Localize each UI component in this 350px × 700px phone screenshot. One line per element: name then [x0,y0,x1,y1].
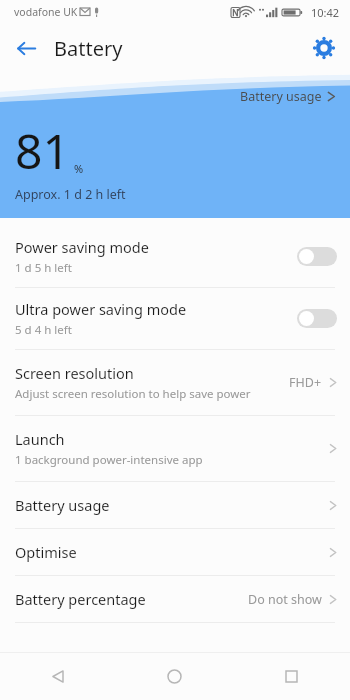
staticText: Launch [15,429,65,449]
staticText: Do not show [248,591,322,608]
button[interactable]: Settings [304,28,344,68]
button[interactable]: Launch [0,416,350,481]
staticText: 1 d 5 h left [15,260,72,276]
button[interactable]: Back [0,653,116,700]
button[interactable]: Screen resolution [0,350,350,415]
staticText: Ultra power saving mode [15,299,187,319]
staticText: Adjust screen resolution to help save po… [15,386,251,402]
staticText: vodafone UK [14,5,78,19]
staticText: 81 [15,118,70,183]
button[interactable]: Battery usage [0,482,350,528]
button[interactable]: Back [6,28,46,68]
button[interactable]: Home [116,653,233,700]
button[interactable]: Recent apps [233,653,350,700]
staticText: Battery usage [240,88,322,105]
staticText: Battery usage [15,495,110,515]
staticText: Battery percentage [15,589,146,609]
button[interactable]: Toggle Power saving mode [297,247,337,266]
button[interactable]: Battery usage [236,86,340,107]
button[interactable]: Battery percentage [0,576,350,622]
button[interactable]: Ultra power saving mode [0,288,350,349]
staticText: 5 d 4 h left [15,322,72,338]
button[interactable]: Power saving mode [0,226,350,287]
staticText: Optimise [15,542,77,562]
staticText: Power saving mode [15,237,149,257]
button[interactable]: Toggle Ultra power saving mode [297,309,337,328]
staticText: % [74,161,84,176]
staticText: Battery [54,35,123,62]
button[interactable]: Optimise [0,529,350,575]
staticText: FHD+ [289,374,322,391]
staticText: 1 background power-intensive app [15,452,203,468]
staticText: Screen resolution [15,363,134,383]
staticText: 10:42 [311,5,340,20]
staticText: Approx. 1 d 2 h left [15,186,126,203]
